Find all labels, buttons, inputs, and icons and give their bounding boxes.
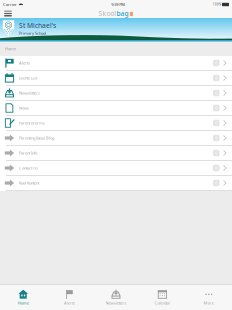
staticText: Parenting Ideas Blog (19, 135, 54, 141)
staticText: Home (5, 46, 16, 51)
button[interactable]: Alerts (46, 285, 93, 310)
staticText: 0 (215, 180, 217, 186)
button[interactable]: Contact Us (0, 161, 232, 176)
button[interactable]: Newsletters (93, 285, 139, 310)
staticText: Primary School (19, 31, 46, 36)
staticText: Parent eForms (19, 120, 45, 126)
button[interactable]: Parent Info (0, 146, 232, 161)
button[interactable]: Events List (0, 71, 232, 86)
staticText: Skool (99, 9, 117, 18)
staticText: Home (18, 300, 29, 306)
staticText: bag (117, 9, 129, 18)
staticText: More (204, 300, 214, 306)
staticText: 0 (215, 75, 217, 81)
button[interactable]: Calendar (139, 285, 186, 310)
staticText: Calendar (154, 300, 170, 306)
staticText: Carrier (3, 2, 17, 7)
staticText: Contact Us (19, 165, 38, 171)
button[interactable]: News (0, 101, 232, 116)
staticText: Newsletters (105, 300, 126, 306)
staticText: 9:39 PM (111, 2, 125, 7)
button[interactable]: Parenting Ideas Blog (0, 131, 232, 146)
staticText: 0 (215, 60, 217, 66)
staticText: Parent Info (19, 150, 37, 156)
staticText: 100% (213, 3, 221, 6)
button[interactable]: Alerts (0, 56, 232, 71)
staticText: News (19, 105, 29, 111)
staticText: 0 (215, 90, 217, 96)
button[interactable]: Home (0, 285, 46, 310)
staticText: Events List (19, 75, 37, 81)
staticText: St Michael's (19, 21, 56, 30)
staticText: Alerts (64, 300, 75, 306)
staticText: 0 (215, 135, 217, 141)
staticText: Kool Kontent (19, 180, 39, 186)
staticText: 0 (215, 120, 217, 126)
staticText: 0 (215, 105, 217, 111)
staticText: Newsletters (19, 90, 40, 96)
button[interactable]: Kool Kontent (0, 176, 232, 191)
button[interactable]: Newsletters (0, 86, 232, 101)
staticText: Alerts (19, 60, 30, 66)
button[interactable]: Parent eForms (0, 116, 232, 131)
button[interactable]: Menu (0, 9, 16, 18)
staticText: 0 (215, 150, 217, 156)
staticText: 0 (215, 165, 217, 171)
button[interactable]: More (186, 285, 232, 310)
